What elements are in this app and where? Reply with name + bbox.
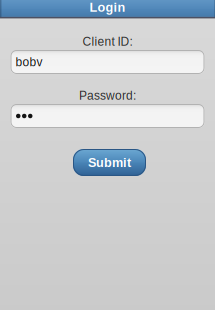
- staticText: Password:: [79, 89, 136, 102]
- button[interactable]: bobv: [10, 50, 204, 74]
- button[interactable]: [10, 104, 204, 128]
- button[interactable]: Login: [72, 0, 142, 16]
- staticText: bobv: [15, 55, 42, 69]
- staticText: Submit: [88, 155, 131, 170]
- button[interactable]: Submit: [73, 149, 146, 176]
- staticText: Client ID:: [82, 35, 132, 48]
- staticText: Login: [89, 0, 125, 14]
